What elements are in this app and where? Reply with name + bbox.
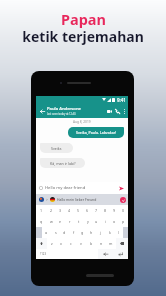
button[interactable]: More options xyxy=(121,108,127,114)
staticText: e xyxy=(59,219,62,224)
button[interactable]: 2 xyxy=(46,205,56,216)
button[interactable]: j xyxy=(96,227,105,238)
button[interactable]: l xyxy=(114,227,123,238)
staticText: Hello my dear friend xyxy=(45,185,118,191)
staticText: z xyxy=(51,241,53,246)
staticText: Hallo mein lieber Freund xyxy=(57,197,120,202)
staticText: ?123 xyxy=(40,252,47,256)
staticText: a xyxy=(45,230,48,235)
staticText: w xyxy=(50,219,53,224)
button[interactable]: 9 xyxy=(110,205,119,216)
staticText: 1 xyxy=(40,208,43,213)
button[interactable]: ?123 xyxy=(36,249,50,259)
staticText: g xyxy=(81,230,84,235)
staticText: Papan xyxy=(61,9,106,29)
button[interactable]: 8 xyxy=(101,205,110,216)
button[interactable]: p xyxy=(119,216,128,227)
staticText: Sveiks xyxy=(51,146,62,151)
button[interactable]: e xyxy=(56,216,65,227)
button[interactable]: 5 xyxy=(74,205,83,216)
button[interactable]: r xyxy=(65,216,74,227)
staticText: 7 xyxy=(95,208,98,213)
button[interactable]: x xyxy=(56,238,66,249)
button[interactable]: c xyxy=(66,238,76,249)
button[interactable]: h xyxy=(87,227,96,238)
staticText: q xyxy=(40,219,43,224)
staticText: n xyxy=(100,241,103,246)
button[interactable]: w xyxy=(46,216,56,227)
staticText: h xyxy=(90,230,93,235)
button[interactable]: 4 xyxy=(65,205,74,216)
staticText: 8 xyxy=(104,208,107,213)
staticText: t xyxy=(78,219,80,224)
button[interactable]: g xyxy=(78,227,87,238)
button[interactable] xyxy=(116,238,128,249)
button[interactable]: Translate xyxy=(39,197,44,202)
button[interactable]: o xyxy=(110,216,119,227)
staticText: 9 xyxy=(113,208,116,213)
staticText: > xyxy=(46,198,48,202)
button[interactable] xyxy=(113,249,128,259)
button[interactable]: Send xyxy=(118,185,125,192)
button[interactable]: u xyxy=(92,216,101,227)
button[interactable]: 0 xyxy=(119,205,128,216)
staticText: i xyxy=(105,219,106,224)
button[interactable]: v xyxy=(76,238,86,249)
staticText: f xyxy=(73,230,75,235)
button[interactable]: a xyxy=(42,227,51,238)
staticText: o xyxy=(113,219,116,224)
button[interactable]: f xyxy=(69,227,78,238)
button[interactable]: Video call xyxy=(105,107,113,115)
staticText: b xyxy=(90,241,93,246)
staticText: r xyxy=(69,219,71,224)
staticText: Kā, man ir labi? xyxy=(50,161,76,166)
staticText: u xyxy=(95,219,98,224)
button[interactable]: n xyxy=(96,238,106,249)
button[interactable]: 1 xyxy=(36,205,46,216)
staticText: 4 xyxy=(68,208,71,213)
staticText: d xyxy=(63,230,66,235)
staticText: Aug 8, 2019 xyxy=(73,120,91,124)
staticText: c xyxy=(70,241,72,246)
staticText: Paula Andersone xyxy=(47,106,81,112)
button[interactable]: t xyxy=(74,216,83,227)
button[interactable]: s xyxy=(51,227,60,238)
button[interactable] xyxy=(98,249,113,259)
staticText: 0 xyxy=(122,208,125,213)
button[interactable]: 6 xyxy=(83,205,92,216)
staticText: y xyxy=(87,219,89,224)
staticText: j xyxy=(100,230,101,235)
staticText: 5 xyxy=(77,208,80,213)
button[interactable]: 3 xyxy=(56,205,65,216)
button[interactable]: 7 xyxy=(92,205,101,216)
staticText: s xyxy=(55,230,57,235)
staticText: l xyxy=(118,230,119,235)
staticText: m xyxy=(109,241,113,246)
staticText: 2 xyxy=(50,208,53,213)
staticText: p xyxy=(122,219,125,224)
button[interactable] xyxy=(36,238,47,249)
staticText: x xyxy=(60,241,62,246)
staticText: v xyxy=(80,241,82,246)
button[interactable]: y xyxy=(83,216,92,227)
staticText: ketik terjemahan xyxy=(22,27,144,46)
staticText: 9:41 xyxy=(117,97,126,103)
staticText: 6 xyxy=(86,208,89,213)
button[interactable]: Back xyxy=(38,107,46,115)
button[interactable]: d xyxy=(60,227,69,238)
staticText: k xyxy=(109,230,111,235)
button[interactable]: q xyxy=(36,216,46,227)
button[interactable]: i xyxy=(101,216,110,227)
button[interactable]: Confirm xyxy=(120,197,126,203)
button[interactable]: z xyxy=(47,238,56,249)
staticText: Sveika, Paula. Labvakar! xyxy=(76,130,117,135)
button[interactable]: Call xyxy=(113,107,121,115)
staticText: 3 xyxy=(59,208,62,213)
button[interactable]: m xyxy=(106,238,116,249)
button[interactable]: k xyxy=(105,227,114,238)
button[interactable]: b xyxy=(86,238,96,249)
staticText: last seen today at 12:45 xyxy=(47,112,76,116)
